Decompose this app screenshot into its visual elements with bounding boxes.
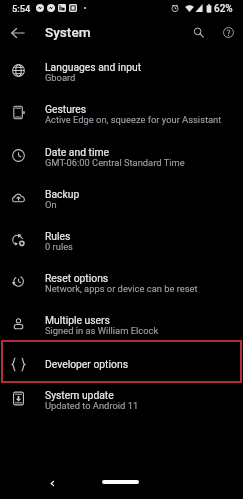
staticText: Rules bbox=[45, 230, 239, 242]
button[interactable]: Navigate up bbox=[7, 22, 29, 44]
button[interactable]: Search settings bbox=[186, 20, 210, 44]
staticText: On bbox=[45, 199, 239, 210]
staticText: 5:54 bbox=[12, 3, 31, 14]
staticText: System bbox=[45, 24, 91, 40]
staticText: Languages and input bbox=[45, 61, 239, 73]
staticText: Gboard bbox=[45, 72, 239, 83]
staticText: Date and time bbox=[45, 146, 239, 158]
staticText: Reset options bbox=[45, 272, 239, 284]
staticText: Multiple users bbox=[45, 314, 239, 326]
button[interactable]: System update bbox=[0, 380, 243, 422]
staticText: 0 rules bbox=[45, 241, 239, 252]
staticText: Signed in as William Elcock bbox=[45, 325, 239, 336]
button[interactable]: Multiple users bbox=[0, 305, 243, 347]
button[interactable]: Reset options bbox=[0, 263, 243, 305]
button[interactable]: Backup bbox=[0, 179, 243, 221]
staticText: 62% bbox=[214, 3, 233, 15]
button[interactable]: Date and time bbox=[0, 137, 243, 179]
staticText: GMT-06:00 Central Standard Time bbox=[45, 157, 239, 168]
button[interactable]: Languages and input bbox=[0, 52, 243, 94]
staticText: Developer options bbox=[45, 358, 243, 370]
button[interactable]: Home bbox=[102, 480, 139, 484]
staticText: Updated to Android 11 bbox=[45, 400, 239, 411]
staticText: System update bbox=[45, 389, 239, 401]
staticText: Network, apps or device can be reset bbox=[45, 283, 239, 294]
button[interactable]: Help and feedback bbox=[216, 20, 240, 44]
staticText: Gestures bbox=[45, 103, 239, 115]
button[interactable]: Gestures bbox=[0, 94, 243, 136]
button[interactable]: Developer options bbox=[0, 348, 243, 381]
button[interactable]: Rules bbox=[0, 221, 243, 263]
button[interactable]: Back bbox=[44, 475, 60, 491]
staticText: Backup bbox=[45, 188, 239, 200]
staticText: Active Edge on, squeeze for your Assista… bbox=[45, 114, 239, 125]
